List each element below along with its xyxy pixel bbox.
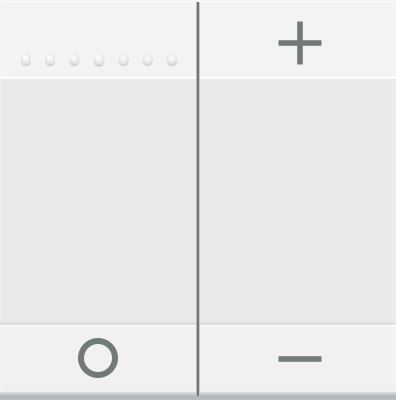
button[interactable]: Increase (201, 3, 396, 83)
button[interactable]: Power (0, 321, 196, 395)
button[interactable]: Decrease (201, 322, 396, 396)
button[interactable]: Scene (1, 20, 197, 99)
